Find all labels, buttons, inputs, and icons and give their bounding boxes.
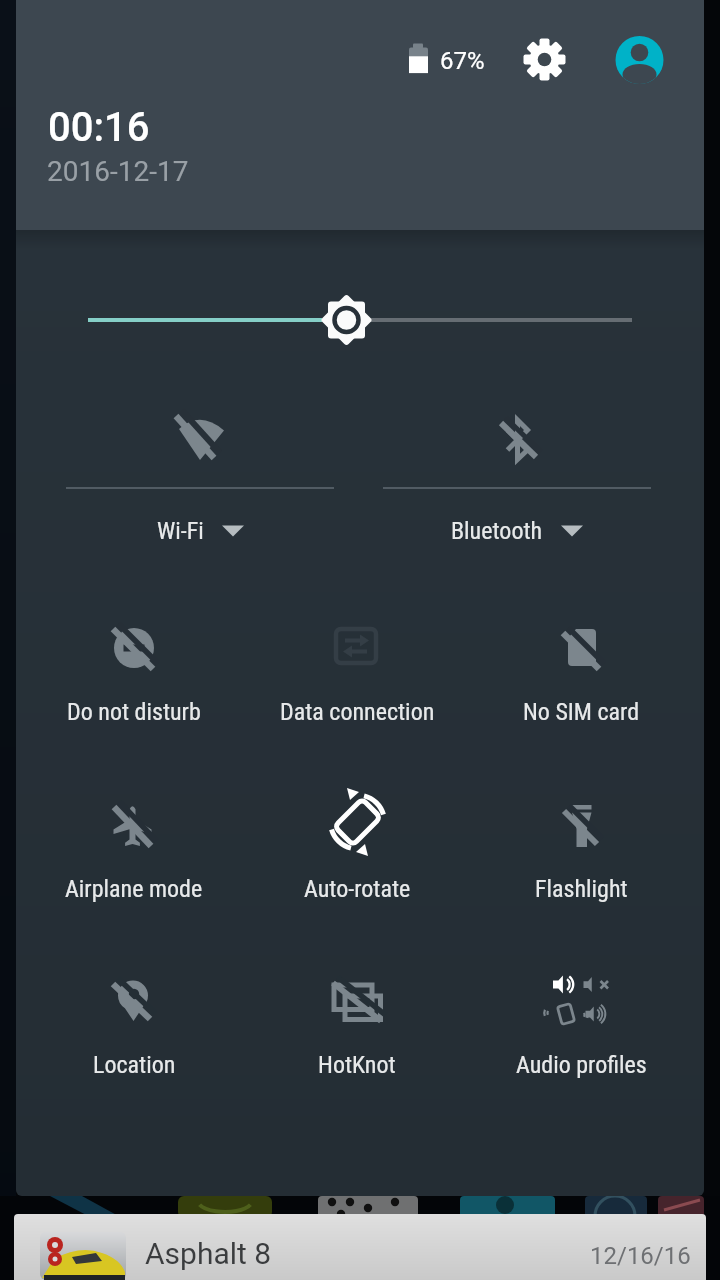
staticText: Flashlight xyxy=(535,875,628,903)
staticText: Location xyxy=(93,1051,176,1079)
button[interactable]: Audio profiles xyxy=(471,953,691,1103)
staticText: Airplane mode xyxy=(65,875,203,903)
staticText: Bluetooth xyxy=(451,517,543,545)
button[interactable]: Asphalt 8 xyxy=(14,1214,706,1280)
button[interactable]: No SIM card xyxy=(471,600,691,750)
button[interactable]: Flashlight xyxy=(471,777,691,927)
button[interactable]: Auto-rotate xyxy=(247,777,467,927)
staticText: Data connection xyxy=(280,698,435,726)
staticText: No SIM card xyxy=(523,698,640,726)
staticText: HotKnot xyxy=(318,1051,396,1079)
staticText: Asphalt 8 xyxy=(145,1236,272,1271)
staticText: Do not disturb xyxy=(67,698,201,726)
button[interactable]: Bluetooth xyxy=(383,400,651,560)
button[interactable]: Location xyxy=(24,953,244,1103)
staticText: Wi-Fi xyxy=(157,517,204,545)
staticText: Auto-rotate xyxy=(304,875,411,903)
staticText: 12/16/16 xyxy=(590,1242,691,1270)
button[interactable]: HotKnot xyxy=(247,953,467,1103)
button[interactable] xyxy=(516,32,572,88)
button[interactable]: Do not disturb xyxy=(24,600,244,750)
staticText: 00:16 xyxy=(48,104,150,151)
staticText: 67% xyxy=(440,47,485,75)
button[interactable]: Airplane mode xyxy=(24,777,244,927)
button[interactable] xyxy=(612,32,668,88)
button[interactable] xyxy=(80,290,640,350)
staticText: Audio profiles xyxy=(516,1051,647,1079)
button[interactable]: Data connection xyxy=(247,600,467,750)
button[interactable]: Wi-Fi xyxy=(66,400,334,560)
staticText: 2016-12-17 xyxy=(47,155,189,188)
